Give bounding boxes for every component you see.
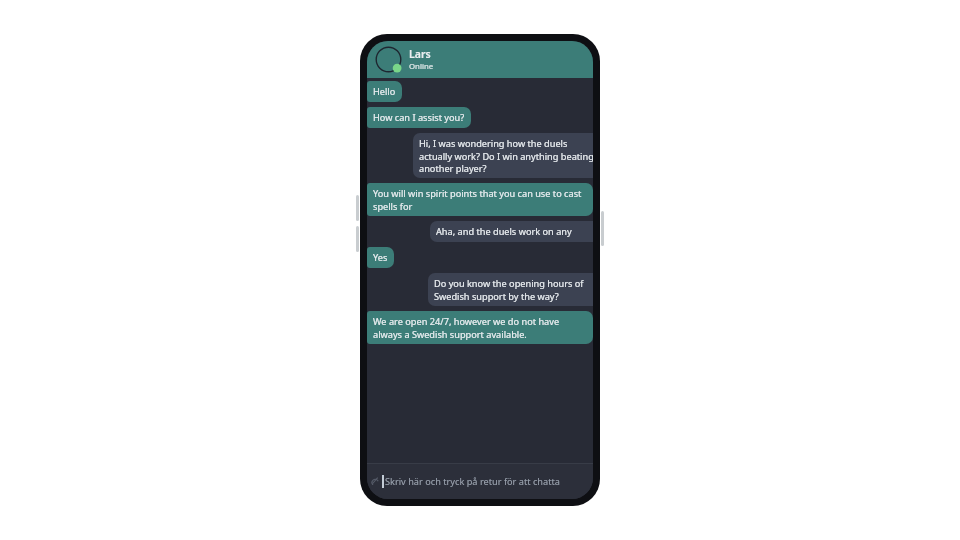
staticText: You will win spirit points that you can … (373, 187, 587, 212)
other: Attach file (370, 476, 381, 487)
button[interactable]: You will win spirit points that you can … (367, 183, 593, 216)
other: Contact avatar (373, 44, 404, 75)
staticText: Aha, and the duels work on any (436, 225, 572, 238)
button[interactable]: Contact avatar (367, 41, 593, 78)
staticText: Online (409, 61, 434, 72)
button[interactable]: We are open 24/7, however we do not have… (367, 311, 593, 344)
button[interactable]: Aha, and the duels work on any (430, 221, 593, 242)
staticText: How can I assist you? (373, 111, 465, 124)
button[interactable]: How can I assist you? (367, 107, 471, 128)
button[interactable]: Yes (367, 247, 394, 268)
button[interactable]: Hi, I was wondering how the duels actual… (413, 133, 593, 178)
staticText: Skriv här och tryck på retur för att cha… (385, 475, 560, 488)
staticText: Lars (409, 47, 431, 61)
staticText: Do you know the opening hours of Swedish… (434, 277, 593, 302)
staticText: Yes (373, 251, 388, 264)
staticText: We are open 24/7, however we do not have… (373, 315, 587, 340)
button[interactable]: Do you know the opening hours of Swedish… (428, 273, 593, 306)
staticText: Hello (373, 85, 396, 98)
staticText: Hi, I was wondering how the duels actual… (419, 137, 593, 174)
button[interactable]: Attach file (367, 464, 593, 499)
button[interactable]: Hello (367, 81, 402, 102)
